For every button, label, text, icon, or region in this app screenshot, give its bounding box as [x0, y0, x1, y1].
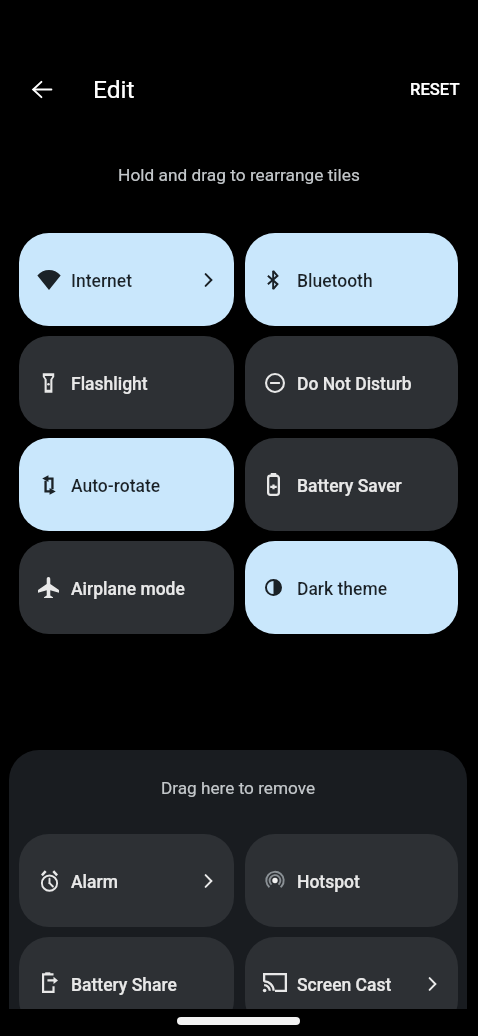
button[interactable]: Flashlight [19, 336, 234, 429]
button[interactable]: Battery Saver [245, 438, 458, 531]
button[interactable]: Internet [19, 233, 234, 326]
staticText: RESET [410, 80, 460, 99]
button[interactable]: Auto-rotate [19, 438, 234, 531]
staticText: Battery Share [71, 975, 177, 996]
staticText: Internet [71, 271, 133, 292]
button[interactable]: Dark theme [245, 541, 458, 634]
staticText: Alarm [71, 872, 118, 893]
button[interactable]: Bluetooth [245, 233, 458, 326]
staticText: Do Not Disturb [297, 374, 412, 395]
staticText: Auto-rotate [71, 476, 161, 497]
button[interactable]: Battery Share [19, 937, 234, 1009]
button[interactable]: RESET [396, 71, 474, 108]
button[interactable]: Back [20, 67, 64, 111]
button[interactable]: Screen Cast [245, 937, 458, 1009]
staticText: Drag here to remove [9, 778, 467, 798]
button[interactable]: Hotspot [245, 834, 458, 927]
button[interactable]: Airplane mode [19, 541, 234, 634]
staticText: Flashlight [71, 374, 148, 395]
button[interactable]: Alarm [19, 834, 234, 927]
staticText: Dark theme [297, 579, 388, 600]
staticText: Hold and drag to rearrange tiles [0, 165, 478, 185]
staticText: Bluetooth [297, 271, 373, 292]
button[interactable]: Do Not Disturb [245, 336, 458, 429]
staticText: Edit [93, 75, 135, 104]
staticText: Screen Cast [297, 975, 392, 996]
staticText: Hotspot [297, 872, 360, 893]
staticText: Airplane mode [71, 579, 185, 600]
staticText: Battery Saver [297, 476, 402, 497]
